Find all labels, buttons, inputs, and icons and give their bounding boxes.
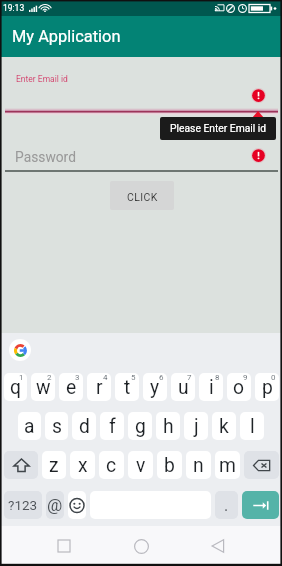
button[interactable]: v (128, 451, 153, 479)
staticText: s (52, 415, 62, 438)
staticText: 19:13 (3, 3, 25, 13)
button[interactable]: y (143, 373, 167, 401)
staticText: p (262, 376, 273, 399)
staticText: c (106, 454, 117, 477)
button[interactable]: Back (206, 534, 230, 558)
staticText: 9 (243, 373, 248, 382)
button[interactable]: Backspace (244, 451, 279, 479)
button[interactable]: My Application (0, 16, 282, 57)
button[interactable]: h (156, 412, 180, 440)
button[interactable]: ?123 (4, 491, 42, 519)
button[interactable]: j (184, 412, 208, 440)
staticText: 2 (47, 373, 52, 382)
button[interactable]: w (31, 373, 55, 401)
button[interactable]: s (45, 412, 68, 440)
staticText: 0 (271, 373, 276, 382)
button[interactable]: m (215, 451, 240, 479)
button[interactable]: Shift (4, 451, 38, 479)
button[interactable]: u (171, 373, 195, 401)
button[interactable]: Enter (242, 491, 279, 519)
button[interactable]: x (70, 451, 95, 479)
button[interactable]: p (255, 373, 279, 401)
staticText: 3 (75, 373, 80, 382)
staticText: 5 (131, 373, 136, 382)
button[interactable]: Emoji (68, 491, 86, 519)
staticText: x (78, 454, 88, 477)
staticText: 7 (187, 373, 192, 382)
button[interactable]: . (215, 491, 238, 519)
staticText: i (209, 376, 214, 399)
button[interactable]: z (42, 451, 66, 479)
staticText: @ (47, 495, 63, 515)
staticText: h (163, 415, 174, 438)
staticText: Enter Email id (16, 74, 68, 84)
button[interactable]: Home (128, 533, 154, 559)
staticText: q (10, 376, 21, 399)
button[interactable]: t (115, 373, 139, 401)
staticText: 4 (103, 373, 108, 382)
staticText: My Application (12, 27, 121, 46)
staticText: a (24, 415, 35, 438)
button[interactable]: Recents (52, 534, 76, 558)
button[interactable]: k (212, 412, 236, 440)
staticText: d (79, 415, 90, 438)
staticText: l (250, 415, 255, 438)
staticText: 8 (215, 373, 220, 382)
button[interactable]: l (240, 412, 264, 440)
button[interactable]: @ (46, 491, 64, 519)
button[interactable]: a (18, 412, 41, 440)
button[interactable]: g (128, 412, 152, 440)
staticText: v (136, 454, 146, 477)
staticText: u (178, 376, 189, 399)
staticText: Password (15, 149, 76, 165)
button[interactable]: c (99, 451, 124, 479)
staticText: z (49, 454, 59, 477)
button[interactable]: CLICK (110, 181, 174, 210)
button[interactable]: f (100, 412, 124, 440)
staticText: r (96, 376, 103, 399)
staticText: . (224, 496, 229, 515)
button[interactable]: n (186, 451, 211, 479)
staticText: f (109, 415, 116, 438)
staticText: Please Enter Email id (170, 122, 267, 134)
button[interactable]: b (157, 451, 182, 479)
staticText: t (124, 376, 131, 399)
staticText: g (135, 415, 146, 438)
staticText: m (219, 454, 236, 477)
staticText: k (219, 415, 229, 438)
button[interactable]: d (72, 412, 96, 440)
button[interactable]: e (59, 373, 83, 401)
staticText: ?123 (8, 497, 38, 513)
staticText: 6 (159, 373, 164, 382)
staticText: CLICK (127, 191, 158, 203)
button[interactable]: o (227, 373, 251, 401)
staticText: b (164, 454, 175, 477)
staticText: y (150, 376, 160, 399)
staticText: 1 (19, 373, 24, 382)
staticText: j (194, 415, 199, 438)
staticText: n (193, 454, 204, 477)
staticText: e (66, 376, 77, 399)
button[interactable]: q (4, 373, 27, 401)
button[interactable]: i (199, 373, 223, 401)
staticText: w (36, 376, 51, 399)
staticText: o (233, 376, 245, 399)
button[interactable]: r (87, 373, 111, 401)
